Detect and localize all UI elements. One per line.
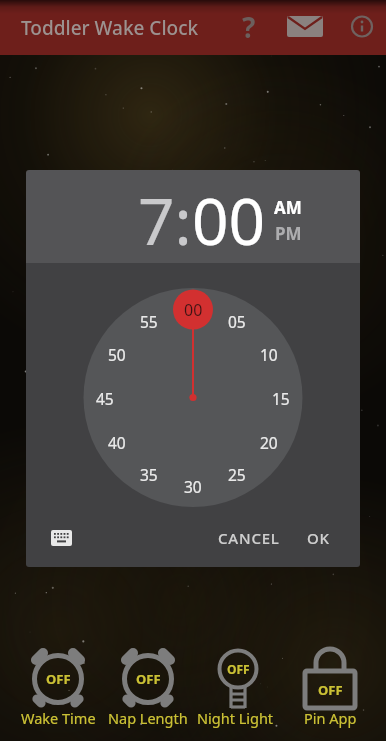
button[interactable]: OFF bbox=[102, 643, 194, 735]
staticText: 25 bbox=[228, 464, 246, 485]
staticText: 55 bbox=[140, 311, 158, 332]
staticText: 00 bbox=[192, 177, 266, 264]
staticText: Pin App bbox=[304, 708, 357, 728]
button[interactable]: PM bbox=[263, 220, 313, 246]
staticText: 10 bbox=[260, 344, 278, 365]
button[interactable]: ? bbox=[227, 5, 271, 49]
staticText: Night Light bbox=[197, 708, 274, 728]
staticText: OFF bbox=[136, 670, 161, 688]
staticText: Nap Length bbox=[108, 708, 188, 728]
staticText: OFF bbox=[318, 681, 343, 699]
staticText: 45 bbox=[96, 388, 114, 409]
staticText: ? bbox=[242, 8, 256, 46]
staticText: Wake Time bbox=[21, 708, 96, 728]
staticText: 00 bbox=[184, 299, 203, 321]
staticText: PM bbox=[275, 222, 302, 245]
staticText: 35 bbox=[140, 464, 158, 485]
staticText: 05 bbox=[228, 311, 246, 332]
button[interactable] bbox=[38, 516, 84, 560]
button[interactable]: AM bbox=[263, 194, 313, 220]
button[interactable]: OFF bbox=[284, 643, 376, 735]
button[interactable]: Toddler Wake Clock bbox=[13, 8, 233, 48]
staticText: CANCEL bbox=[218, 528, 280, 548]
staticText: 50 bbox=[108, 344, 126, 365]
button[interactable] bbox=[283, 5, 327, 49]
staticText: OFF bbox=[227, 661, 250, 677]
staticText: 7: bbox=[138, 177, 192, 264]
staticText: 30 bbox=[184, 476, 202, 497]
button[interactable] bbox=[340, 5, 384, 49]
staticText: OFF bbox=[46, 670, 71, 688]
button[interactable]: CANCEL bbox=[204, 518, 294, 558]
staticText: AM bbox=[274, 196, 302, 219]
staticText: 20 bbox=[260, 432, 278, 453]
staticText: OK bbox=[307, 528, 330, 548]
staticText: 40 bbox=[108, 432, 126, 453]
staticText: 15 bbox=[272, 388, 290, 409]
staticText: Toddler Wake Clock bbox=[21, 15, 199, 41]
button[interactable]: OK bbox=[288, 518, 348, 558]
button[interactable]: OFF bbox=[12, 643, 104, 735]
button[interactable]: OFF bbox=[193, 643, 285, 735]
